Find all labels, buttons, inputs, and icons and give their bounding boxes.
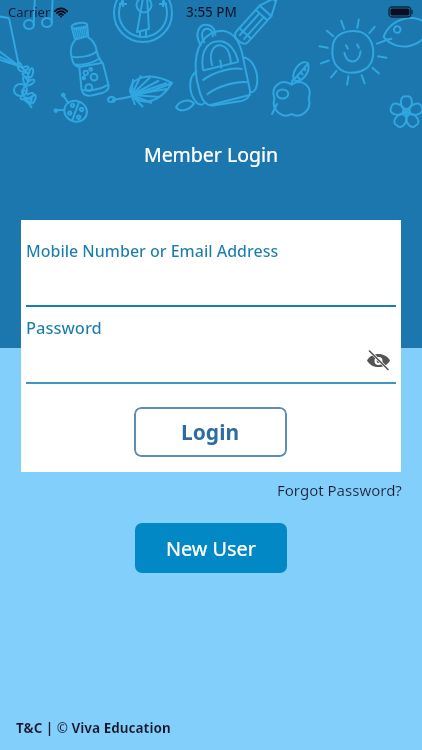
staticText: Mobile Number or Email Address (26, 240, 279, 262)
button[interactable]: T&C | © Viva Education (16, 719, 171, 737)
button[interactable]: Login (134, 407, 287, 457)
staticText: Forgot Password? (277, 480, 402, 500)
staticText: Login (181, 418, 240, 447)
staticText: 3:55 PM (186, 3, 237, 21)
staticText: T&C | © Viva Education (16, 719, 171, 737)
button[interactable]: Show password (362, 344, 394, 376)
staticText: Password (26, 316, 102, 338)
button[interactable]: New User (135, 523, 287, 573)
button[interactable]: Forgot Password? (274, 478, 405, 502)
staticText: New User (166, 535, 256, 562)
staticText: Carrier (8, 3, 51, 21)
staticText: Member Login (0, 141, 422, 168)
